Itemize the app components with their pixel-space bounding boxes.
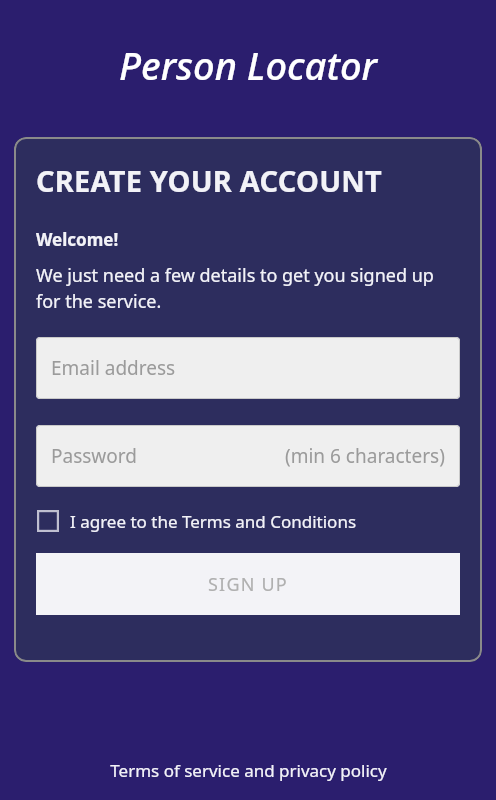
button[interactable]: I agree to the Terms and Conditions — [36, 505, 460, 537]
staticText: (min 6 characters) — [285, 443, 445, 469]
staticText: Welcome! — [36, 228, 119, 251]
staticText: Person Locator — [119, 39, 377, 91]
staticText: Terms of service and privacy policy — [110, 759, 387, 782]
button[interactable]: Email address — [36, 337, 460, 399]
staticText: SIGN UP — [208, 572, 288, 597]
staticText: We just need a few details to get you si… — [36, 263, 460, 313]
button[interactable]: Password — [36, 425, 460, 487]
button[interactable]: Terms of service and privacy policy — [0, 751, 496, 800]
staticText: I agree to the Terms and Conditions — [70, 510, 357, 533]
staticText: Email address — [51, 355, 176, 381]
staticText: Password — [51, 443, 137, 469]
staticText: CREATE YOUR ACCOUNT — [36, 161, 382, 200]
button[interactable]: SIGN UP — [36, 553, 460, 615]
